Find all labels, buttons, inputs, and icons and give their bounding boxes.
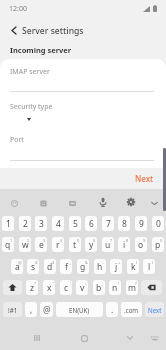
button[interactable]: 3 — [35, 216, 47, 231]
button[interactable]: Stickers — [35, 195, 51, 211]
button[interactable]: Back — [119, 327, 141, 349]
button[interactable]: y — [85, 237, 97, 252]
staticText: ; — [102, 281, 104, 286]
staticText: ? — [135, 281, 137, 286]
staticText: : — [85, 281, 87, 286]
button[interactable]: 1 — [2, 216, 14, 231]
staticText: @ — [43, 304, 51, 316]
button[interactable]: a — [11, 259, 23, 274]
button[interactable]: b — [93, 280, 105, 295]
staticText: * — [34, 281, 37, 286]
staticText: z — [30, 282, 34, 294]
button[interactable]: 7 — [102, 216, 114, 231]
button[interactable]: q — [2, 237, 14, 252]
staticText: m — [128, 282, 136, 294]
button[interactable]: d — [44, 259, 56, 274]
staticText: p — [155, 239, 161, 251]
staticText: d — [47, 261, 53, 273]
button[interactable]: 0 — [152, 216, 164, 231]
button[interactable]: , — [25, 302, 37, 317]
staticText: x — [47, 282, 52, 294]
button[interactable]: EN(UK) — [56, 302, 103, 317]
button[interactable]: . — [106, 302, 118, 317]
button[interactable]: Shift — [3, 280, 22, 295]
staticText: , — [30, 304, 33, 316]
staticText: t — [73, 239, 77, 251]
button[interactable]: Hide keyboard — [144, 327, 166, 349]
button[interactable]: f — [60, 259, 72, 274]
button[interactable]: c — [60, 280, 72, 295]
staticText: 2 — [27, 238, 30, 243]
button[interactable]: j — [110, 259, 122, 274]
button[interactable]: w — [19, 237, 31, 252]
button[interactable]: g — [77, 259, 89, 274]
staticText: 9 — [143, 238, 146, 243]
staticText: k — [131, 261, 136, 273]
button[interactable]: p — [152, 237, 164, 252]
staticText: v — [80, 282, 85, 294]
button[interactable]: Home — [73, 327, 95, 349]
button[interactable]: Hide keyboard — [146, 195, 162, 211]
button[interactable]: 6 — [85, 216, 97, 231]
button[interactable]: m — [126, 280, 138, 295]
staticText: c — [64, 282, 69, 294]
staticText: Incoming server — [10, 45, 72, 55]
staticText: 4 — [60, 238, 63, 243]
staticText: !#1 — [8, 306, 18, 314]
staticText: l — [148, 261, 151, 273]
staticText: q — [5, 239, 11, 251]
button[interactable]: Emoji — [6, 195, 22, 211]
button[interactable]: 9 — [135, 216, 147, 231]
button[interactable]: @ — [40, 302, 53, 317]
button[interactable]: n — [109, 280, 121, 295]
staticText: g — [80, 261, 86, 273]
button[interactable]: i — [118, 237, 130, 252]
staticText: 1 — [10, 238, 13, 243]
button[interactable]: r — [52, 237, 64, 252]
button[interactable]: 5 — [69, 216, 81, 231]
button[interactable]: z — [26, 280, 38, 295]
button[interactable]: GIF — [64, 195, 80, 211]
button[interactable]: .com — [121, 302, 142, 317]
staticText: 6 — [89, 218, 94, 230]
button[interactable]: Backspace — [141, 280, 162, 295]
button[interactable]: u — [102, 237, 114, 252]
staticText: ' — [70, 281, 71, 286]
button[interactable]: Voice input — [95, 194, 111, 210]
staticText: $ — [52, 260, 55, 265]
staticText: 7 — [110, 238, 113, 243]
button[interactable]: v — [76, 280, 88, 295]
staticText: b — [96, 282, 102, 294]
button[interactable]: x — [43, 280, 55, 295]
staticText: 5 — [73, 218, 78, 230]
button[interactable]: t — [69, 237, 81, 252]
button[interactable]: 4 — [52, 216, 64, 231]
button[interactable]: Recent apps — [26, 327, 48, 349]
staticText: 7 — [106, 218, 111, 230]
button[interactable]: !#1 — [3, 302, 22, 317]
button[interactable]: Navigate up — [2, 18, 26, 42]
staticText: y — [89, 239, 94, 251]
staticText: IMAP server — [10, 67, 50, 77]
staticText: f — [65, 261, 68, 273]
button[interactable]: e — [35, 237, 47, 252]
button[interactable]: Next — [135, 173, 154, 184]
button[interactable]: o — [135, 237, 147, 252]
button[interactable]: k — [127, 259, 139, 274]
button[interactable]: s — [27, 259, 39, 274]
button[interactable]: h — [94, 259, 106, 274]
staticText: Next — [135, 173, 154, 184]
staticText: 0 — [160, 238, 163, 243]
staticText: s — [31, 261, 36, 273]
button[interactable]: 2 — [19, 216, 31, 231]
staticText: 2 — [23, 218, 28, 230]
staticText: ! — [118, 281, 120, 286]
staticText: o — [138, 239, 144, 251]
staticText: i — [123, 239, 126, 251]
button[interactable]: Next — [145, 302, 164, 317]
staticText: @ — [18, 260, 22, 265]
button[interactable]: l — [143, 259, 155, 274]
button[interactable]: 8 — [118, 216, 130, 231]
button[interactable]: Keyboard settings — [123, 194, 139, 210]
staticText: ) — [152, 260, 154, 265]
